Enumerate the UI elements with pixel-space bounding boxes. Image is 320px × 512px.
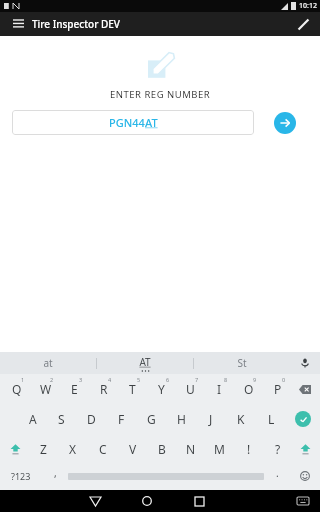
button[interactable]: at <box>0 352 96 374</box>
staticText: P <box>274 381 282 397</box>
button[interactable]: Delete <box>292 374 318 404</box>
button[interactable]: Back <box>69 490 121 512</box>
button[interactable]: P <box>263 374 292 404</box>
button[interactable]: B <box>147 434 176 464</box>
button[interactable]: Emoji <box>290 464 320 488</box>
staticText: ! <box>247 441 251 457</box>
staticText: 0 <box>282 376 286 383</box>
button[interactable]: O <box>234 374 263 404</box>
button[interactable]: G <box>136 404 166 434</box>
staticText: 7 <box>195 376 199 383</box>
staticText: J <box>209 411 213 427</box>
button[interactable]: AT <box>97 352 193 374</box>
button[interactable]: U <box>176 374 205 404</box>
staticText: 9 <box>253 376 257 383</box>
staticText: T <box>129 381 136 397</box>
button[interactable]: J <box>196 404 226 434</box>
staticText: R <box>100 381 108 397</box>
button[interactable]: Shift <box>292 434 318 464</box>
staticText: St <box>237 356 247 370</box>
button[interactable]: S <box>47 404 76 434</box>
staticText: Q <box>12 381 22 397</box>
staticText: 3 <box>79 376 83 383</box>
button[interactable]: PGN44 <box>12 110 254 135</box>
staticText: C <box>99 441 107 457</box>
staticText: G <box>147 411 156 427</box>
staticText: N <box>186 441 196 457</box>
staticText: 8 <box>224 376 228 383</box>
staticText: ? <box>275 441 281 457</box>
staticText: V <box>129 441 137 457</box>
button[interactable]: C <box>88 434 118 464</box>
button[interactable]: A <box>18 404 47 434</box>
staticText: 10:12 <box>299 1 317 11</box>
staticText: U <box>186 381 195 397</box>
button[interactable]: Space <box>68 464 264 488</box>
button[interactable]: Z <box>28 434 58 464</box>
staticText: Z <box>40 441 47 457</box>
staticText: PGN44 <box>109 115 145 130</box>
button[interactable]: Recent apps <box>173 490 225 512</box>
staticText: AT <box>139 355 151 369</box>
staticText: Tire Inspector DEV <box>32 17 121 31</box>
button[interactable]: Submit registration number <box>274 112 296 134</box>
button[interactable]: Done <box>286 404 320 434</box>
staticText: at <box>43 356 53 370</box>
button[interactable]: F <box>106 404 136 434</box>
button[interactable]: ! <box>234 434 263 464</box>
button[interactable]: I <box>205 374 234 404</box>
staticText: O <box>244 381 254 397</box>
staticText: , <box>54 466 57 480</box>
button[interactable]: Open navigation menu <box>8 14 28 34</box>
button[interactable]: X <box>58 434 88 464</box>
staticText: K <box>237 411 245 427</box>
staticText: D <box>87 411 96 427</box>
button[interactable]: V <box>118 434 147 464</box>
staticText: H <box>177 411 186 427</box>
staticText: A <box>29 411 37 427</box>
staticText: B <box>158 441 166 457</box>
button[interactable]: K <box>226 404 256 434</box>
button[interactable]: D <box>76 404 106 434</box>
button[interactable]: Switch keyboard <box>290 490 316 512</box>
button[interactable]: L <box>256 404 286 434</box>
staticText: ENTER REG NUMBER <box>110 88 211 101</box>
button[interactable]: ? <box>263 434 292 464</box>
staticText: Y <box>158 381 165 397</box>
staticText: 6 <box>166 376 170 383</box>
button[interactable]: T <box>118 374 147 404</box>
button[interactable]: M <box>205 434 234 464</box>
staticText: W <box>40 381 52 397</box>
staticText: I <box>217 381 222 397</box>
staticText: F <box>118 411 125 427</box>
button[interactable]: N <box>176 434 205 464</box>
staticText: 1 <box>21 376 25 383</box>
button[interactable]: Home <box>121 490 173 512</box>
button[interactable]: E <box>60 374 89 404</box>
button[interactable]: W <box>31 374 60 404</box>
button[interactable]: St <box>194 352 290 374</box>
staticText: E <box>71 381 78 397</box>
staticText: . <box>276 466 279 480</box>
staticText: AT <box>145 115 158 130</box>
button[interactable]: Edit <box>293 14 313 34</box>
button[interactable]: ?123 <box>0 464 42 488</box>
button[interactable]: Shift <box>2 434 28 464</box>
button[interactable]: . <box>264 464 290 488</box>
staticText: X <box>69 441 77 457</box>
staticText: 5 <box>137 376 141 383</box>
button[interactable]: R <box>89 374 118 404</box>
staticText: 4 <box>108 376 112 383</box>
staticText: L <box>268 411 275 427</box>
button[interactable]: Voice input <box>290 352 320 374</box>
button[interactable]: H <box>166 404 196 434</box>
staticText: M <box>214 441 225 457</box>
staticText: ?123 <box>11 470 31 482</box>
button[interactable]: Q <box>2 374 31 404</box>
staticText: 2 <box>50 376 54 383</box>
staticText: S <box>58 411 65 427</box>
button[interactable]: , <box>42 464 68 488</box>
button[interactable]: Y <box>147 374 176 404</box>
